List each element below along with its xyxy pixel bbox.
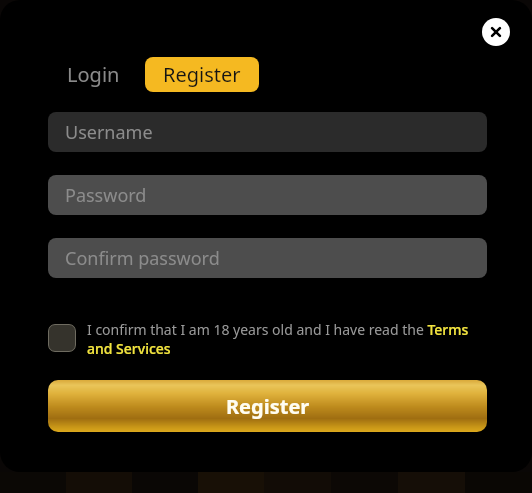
button[interactable]: Login (48, 57, 139, 92)
staticText: Register (163, 61, 241, 88)
staticText: Password (65, 183, 147, 208)
staticText: I confirm that I am 18 years old and I h… (87, 320, 487, 358)
button[interactable]: Register (145, 57, 259, 92)
button[interactable]: Confirm password (48, 238, 487, 278)
staticText: Login (67, 61, 120, 88)
staticText: Register (226, 393, 310, 420)
button[interactable]: Register (48, 380, 487, 432)
button[interactable]: I confirm that I am 18 years old and I h… (48, 320, 487, 358)
button[interactable]: Password (48, 175, 487, 215)
staticText: Username (65, 120, 153, 145)
button[interactable]: Close (482, 18, 510, 46)
staticText: Confirm password (65, 246, 220, 271)
button[interactable]: Username (48, 112, 487, 152)
